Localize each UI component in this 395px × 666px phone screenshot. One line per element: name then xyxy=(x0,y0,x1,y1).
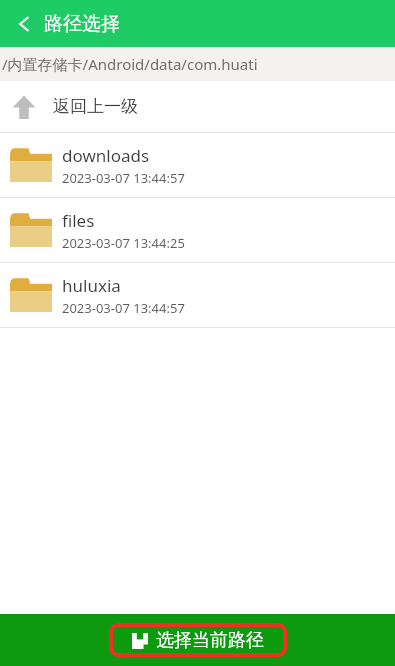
button[interactable]: Back xyxy=(10,10,38,38)
staticText: 路径选择 xyxy=(44,12,120,36)
button[interactable]: 选择当前路径 xyxy=(118,623,278,658)
staticText: 2023-03-07 13:44:57 xyxy=(62,299,185,317)
button[interactable]: huluxia xyxy=(0,263,395,327)
button[interactable]: files xyxy=(0,198,395,262)
staticText: 选择当前路径 xyxy=(156,629,264,652)
staticText: huluxia xyxy=(62,274,121,297)
staticText: 2023-03-07 13:44:57 xyxy=(62,169,185,187)
button[interactable]: downloads xyxy=(0,133,395,197)
staticText: 返回上一级 xyxy=(53,96,138,117)
button[interactable]: 返回上一级 xyxy=(0,81,395,132)
staticText: /内置存储卡/Android/data/com.huati xyxy=(2,54,258,74)
staticText: downloads xyxy=(62,144,150,167)
staticText: files xyxy=(62,209,95,232)
staticText: 2023-03-07 13:44:25 xyxy=(62,234,185,252)
